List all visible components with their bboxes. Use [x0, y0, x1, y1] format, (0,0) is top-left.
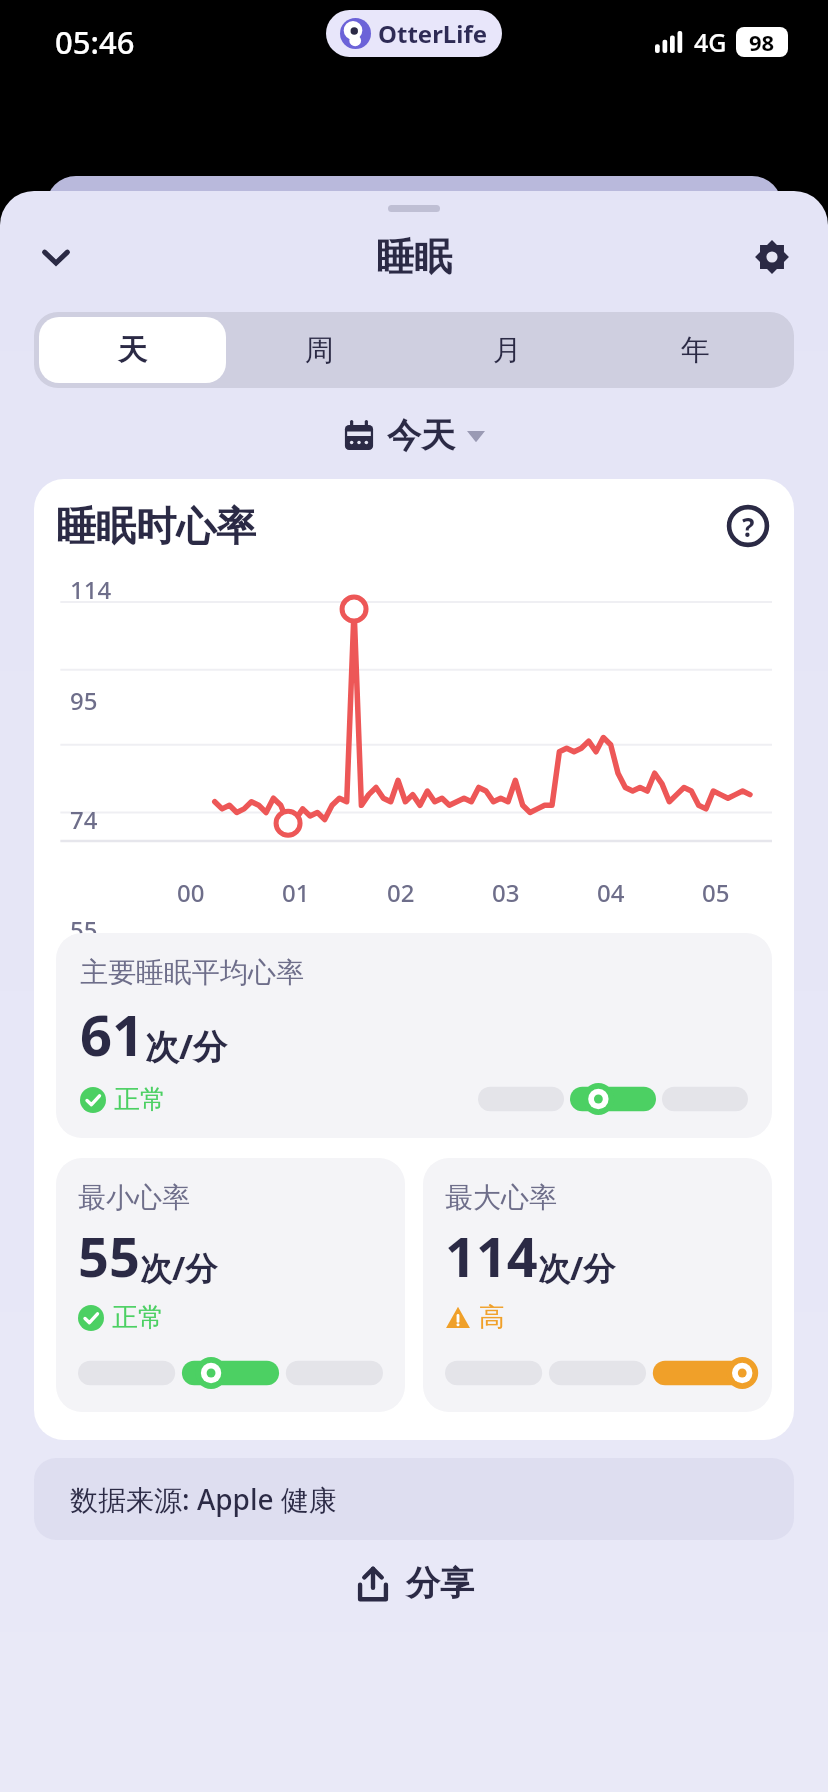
staticText: 年: [681, 332, 710, 369]
staticText: 周: [305, 332, 334, 369]
button[interactable]: 天: [39, 317, 226, 383]
button[interactable]: Help: [724, 502, 772, 550]
button[interactable]: 年: [601, 317, 789, 383]
staticText: 05:46: [55, 21, 135, 63]
staticText: 61: [80, 996, 145, 1072]
staticText: 最小心率: [78, 1180, 190, 1215]
staticText: 高: [479, 1301, 505, 1334]
staticText: 分享: [406, 1562, 474, 1605]
staticText: 02: [387, 876, 415, 909]
staticText: 正常: [114, 1083, 166, 1116]
button[interactable]: 分享: [0, 1562, 828, 1605]
staticText: 00: [177, 876, 205, 909]
staticText: 05: [702, 876, 730, 909]
staticText: 114: [445, 1219, 538, 1293]
staticText: 次/分: [140, 1246, 218, 1290]
staticText: 主要睡眠平均心率: [80, 955, 304, 990]
staticText: 最大心率: [445, 1180, 557, 1215]
staticText: 次/分: [538, 1246, 616, 1290]
button[interactable]: 周: [226, 317, 413, 383]
button[interactable]: Settings: [746, 231, 798, 283]
staticText: 数据来源: Apple 健康: [70, 1480, 337, 1518]
staticText: 98: [749, 27, 775, 57]
button[interactable]: 月: [413, 317, 601, 383]
staticText: 睡眠时心率: [56, 501, 724, 551]
staticText: 01: [282, 876, 310, 909]
staticText: 114: [70, 573, 112, 606]
staticText: 月: [493, 332, 522, 369]
staticText: 天: [118, 332, 147, 369]
button[interactable]: 最小心率: [56, 1158, 405, 1412]
button[interactable]: 主要睡眠平均心率: [56, 933, 772, 1138]
staticText: 55: [78, 1219, 140, 1293]
button[interactable]: 最大心率: [423, 1158, 772, 1412]
staticText: 正常: [112, 1301, 164, 1334]
staticText: 74: [70, 803, 98, 836]
button[interactable]: Collapse: [30, 231, 82, 283]
staticText: 95: [70, 684, 98, 717]
button[interactable]: 今天: [0, 414, 828, 457]
staticText: 4G: [694, 25, 727, 59]
staticText: 04: [597, 876, 625, 909]
staticText: OtterLife: [378, 17, 488, 50]
staticText: 03: [492, 876, 520, 909]
staticText: 次/分: [145, 1023, 228, 1069]
staticText: ?: [742, 509, 755, 544]
button[interactable]: 数据来源: Apple 健康: [34, 1458, 794, 1540]
staticText: 今天: [387, 414, 455, 457]
staticText: 睡眠: [376, 233, 452, 281]
staticText: 55: [70, 913, 98, 946]
